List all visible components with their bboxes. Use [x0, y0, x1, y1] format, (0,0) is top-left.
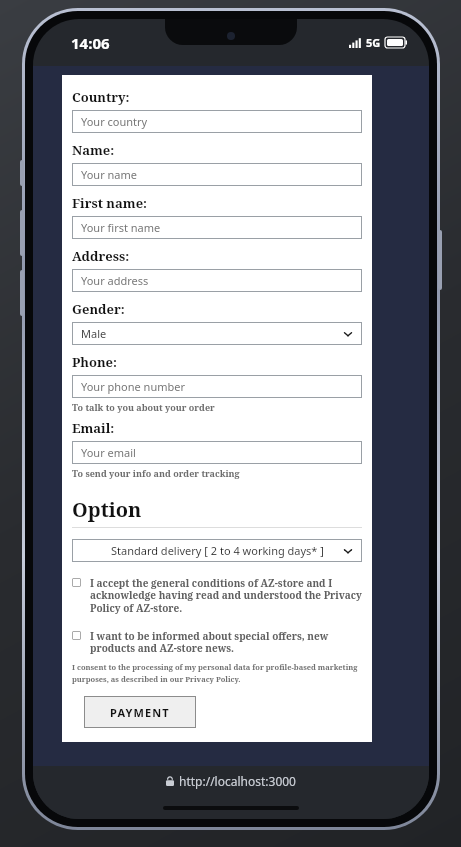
staticText: I accept the general conditions of AZ-st…	[90, 576, 362, 615]
button[interactable]: Standard delivery [ 2 to 4 working days*…	[72, 539, 362, 562]
button[interactable]: http://localhost:3000	[166, 773, 296, 789]
button[interactable]: Checkbox	[72, 629, 362, 655]
staticText: Your phone number	[81, 379, 186, 394]
staticText: 5G	[366, 35, 381, 50]
button[interactable]: Your first name	[72, 216, 362, 239]
staticText: Male	[81, 326, 107, 341]
button[interactable]: Your email	[72, 441, 362, 464]
staticText: http://localhost:3000	[179, 773, 296, 789]
staticText: Phone:	[72, 353, 118, 371]
other: Checkbox	[72, 578, 81, 587]
staticText: Country:	[72, 88, 130, 106]
button[interactable]: PAYMENT	[84, 696, 196, 728]
button[interactable]: Checkbox	[72, 576, 362, 615]
staticText: Your name	[81, 167, 137, 182]
staticText: To talk to you about your order	[72, 401, 215, 413]
staticText: Address:	[72, 247, 130, 265]
staticText: I want to be informed about special offe…	[90, 629, 329, 655]
staticText: Your email	[81, 445, 136, 460]
staticText: 14:06	[71, 33, 110, 53]
staticText: PAYMENT	[110, 705, 170, 720]
staticText: Standard delivery [ 2 to 4 working days*…	[111, 543, 324, 558]
staticText: First name:	[72, 194, 148, 212]
staticText: I consent to the processing of my person…	[72, 662, 358, 685]
staticText: Gender:	[72, 300, 125, 318]
staticText: Email:	[72, 419, 115, 437]
button[interactable]: Your country	[72, 110, 362, 133]
staticText: Your address	[81, 273, 149, 288]
button[interactable]: Male	[72, 322, 362, 345]
button[interactable]: Your name	[72, 163, 362, 186]
other: Checkbox	[72, 631, 81, 640]
button[interactable]: Your address	[72, 269, 362, 292]
staticText: Option	[72, 496, 142, 523]
staticText: Name:	[72, 141, 115, 159]
button[interactable]: Your phone number	[72, 375, 362, 398]
staticText: Your country	[81, 114, 148, 129]
staticText: To send your info and order tracking	[72, 467, 240, 479]
staticText: Your first name	[81, 220, 161, 235]
